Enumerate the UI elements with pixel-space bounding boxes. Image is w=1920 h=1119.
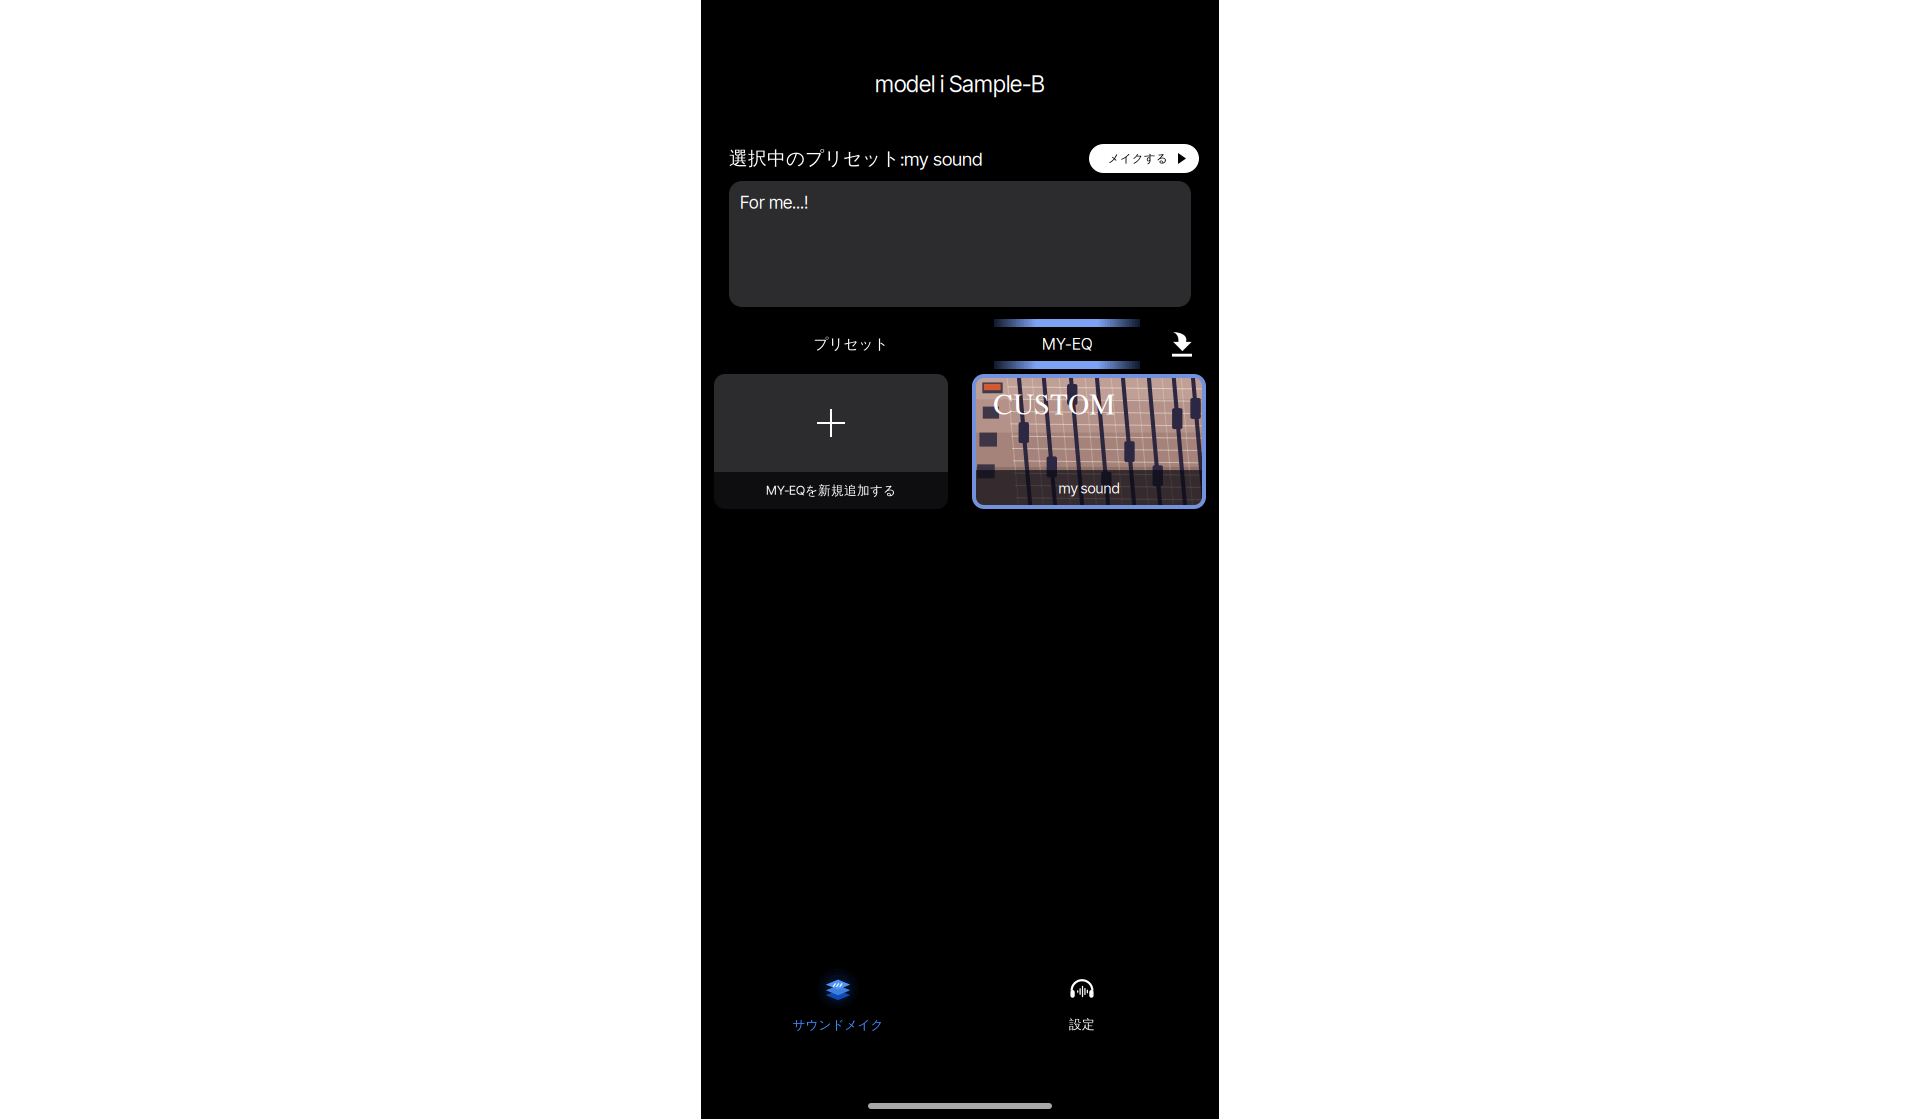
button[interactable]: MY-EQ [994, 317, 1140, 371]
staticText: 設定 [1069, 1016, 1095, 1032]
staticText: メイクする [1108, 151, 1168, 166]
staticText: For me...! [740, 192, 808, 213]
staticText: サウンドメイク [792, 1017, 883, 1033]
staticText: model i Sample-B [875, 70, 1045, 98]
staticText: MY-EQを新規追加する [766, 482, 896, 498]
button[interactable]: プリセット [778, 317, 924, 371]
staticText: プリセット [813, 335, 888, 353]
button[interactable]: サウンドメイク [758, 975, 918, 1033]
button[interactable]: MY-EQを新規追加する [714, 374, 948, 509]
button[interactable]: メイクする [1089, 144, 1199, 173]
staticText: MY-EQ [1042, 334, 1092, 354]
staticText: CUSTOM [993, 391, 1115, 420]
button[interactable]: CUSTOM [972, 374, 1206, 509]
button[interactable]: 設定 [1002, 975, 1162, 1033]
staticText: 選択中のプリセット:my sound [729, 147, 982, 170]
staticText: my sound [1058, 479, 1119, 497]
button[interactable]: Save MY-EQ [1168, 324, 1196, 364]
